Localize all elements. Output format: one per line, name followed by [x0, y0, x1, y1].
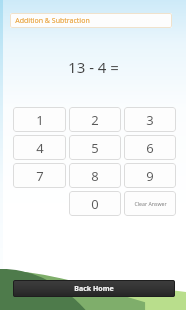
staticText: Addition & Subtraction	[15, 16, 90, 26]
button[interactable]: 3	[124, 107, 176, 132]
staticText: 5	[91, 139, 99, 157]
button[interactable]: 7	[13, 163, 66, 188]
button[interactable]: 4	[13, 135, 66, 160]
staticText: 8	[91, 167, 99, 185]
staticText: 9	[146, 167, 154, 185]
staticText: 7	[36, 167, 44, 185]
button[interactable]: 8	[69, 163, 121, 188]
staticText: Back Home	[74, 284, 114, 294]
button[interactable]: 5	[69, 135, 121, 160]
button[interactable]: Clear Answer	[124, 191, 176, 216]
button[interactable]: 2	[69, 107, 121, 132]
staticText: 1	[36, 111, 44, 129]
staticText: 3	[146, 111, 154, 129]
button[interactable]: 6	[124, 135, 176, 160]
staticText: 0	[91, 195, 99, 213]
button[interactable]: Back Home	[13, 280, 175, 297]
staticText: 6	[146, 139, 154, 157]
button[interactable]: 0	[69, 191, 121, 216]
button[interactable]: 1	[13, 107, 66, 132]
staticText: 13 - 4 =	[68, 57, 119, 77]
staticText: 2	[91, 111, 99, 129]
staticText: Clear Answer	[134, 200, 167, 207]
staticText: 4	[36, 139, 44, 157]
button[interactable]: 9	[124, 163, 176, 188]
button[interactable]: Addition & Subtraction	[10, 13, 172, 28]
